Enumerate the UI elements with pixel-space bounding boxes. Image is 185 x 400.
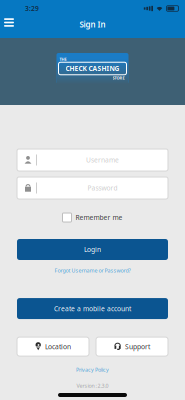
- staticText: Password: [87, 184, 117, 192]
- staticText: Support: [125, 342, 150, 351]
- button[interactable]: Username: [17, 149, 168, 171]
- button[interactable]: Location: [17, 337, 89, 356]
- staticText: THE: [59, 56, 66, 62]
- staticText: Create a mobile account: [54, 304, 131, 313]
- button[interactable]: Login: [17, 239, 168, 260]
- staticText: STORE: [112, 75, 124, 80]
- button[interactable]: Support: [96, 337, 168, 356]
- staticText: Version : 2.3.0: [76, 382, 108, 389]
- staticText: Location: [45, 342, 71, 351]
- button[interactable]: Forgot Username or Password?: [54, 260, 130, 274]
- staticText: Privacy Policy: [76, 366, 109, 373]
- button[interactable]: Password: [17, 177, 168, 199]
- staticText: CHECK CASHING: [65, 64, 119, 73]
- staticText: Login: [84, 245, 101, 254]
- button[interactable]: Remember me: [62, 213, 122, 222]
- staticText: Remember me: [75, 213, 122, 222]
- button[interactable]: Menu: [0, 15, 14, 30]
- button[interactable]: Create a mobile account: [17, 298, 168, 319]
- staticText: Sign In: [79, 19, 105, 30]
- staticText: Forgot Username or Password?: [54, 267, 130, 274]
- staticText: 3:29: [25, 4, 39, 13]
- staticText: Username: [86, 156, 119, 164]
- button[interactable]: Privacy Policy: [76, 356, 109, 373]
